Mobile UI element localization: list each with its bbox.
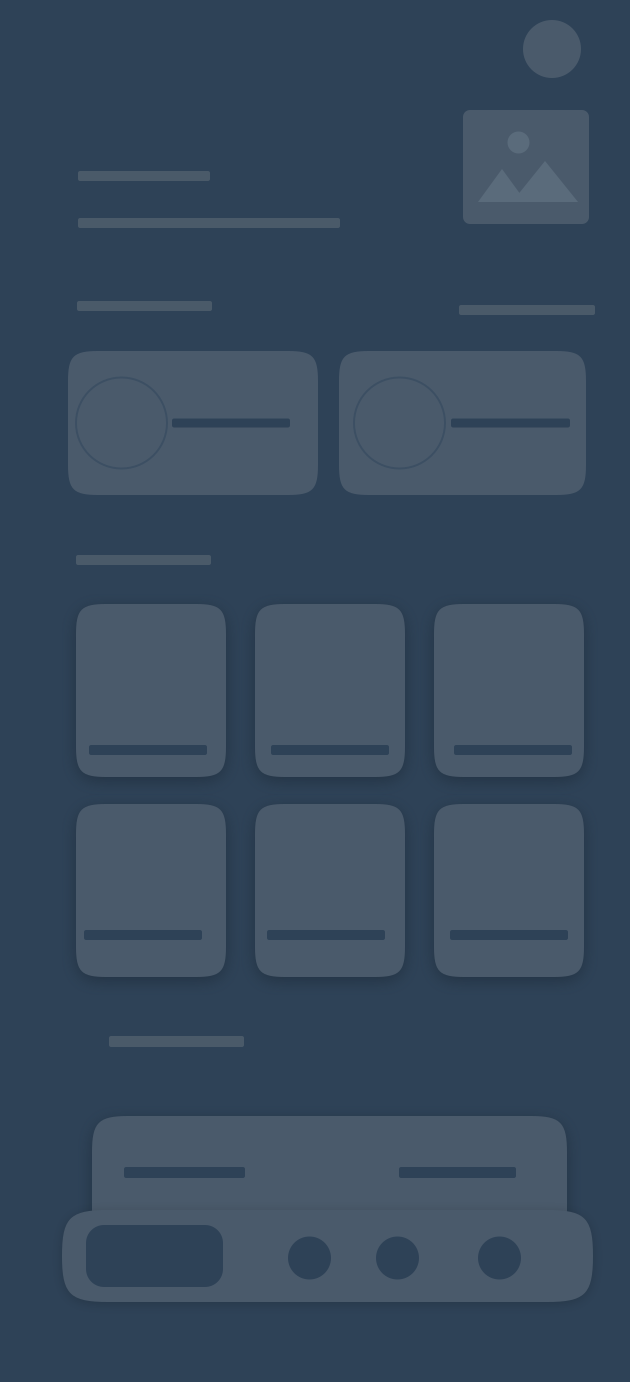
button[interactable] [434, 604, 584, 777]
button[interactable]: Notifications [376, 1236, 419, 1279]
button[interactable] [255, 604, 405, 777]
button[interactable] [76, 804, 226, 977]
button[interactable] [68, 351, 318, 495]
button[interactable]: Profile [523, 20, 581, 78]
button[interactable] [255, 804, 405, 977]
button[interactable]: Account [478, 1236, 521, 1279]
button[interactable] [434, 804, 584, 977]
button[interactable] [339, 351, 586, 495]
button[interactable]: Home [86, 1225, 223, 1287]
button[interactable] [76, 604, 226, 777]
button[interactable]: Search [288, 1236, 331, 1279]
